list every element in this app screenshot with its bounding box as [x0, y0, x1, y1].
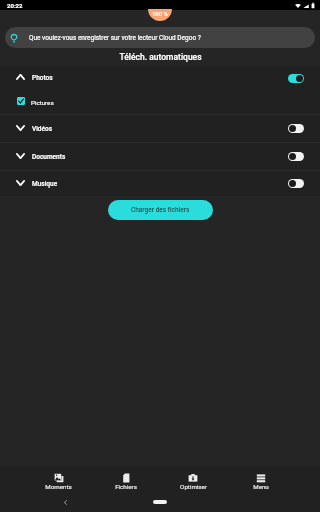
- staticText: Que voulez-vous enregistrer sur votre le…: [29, 34, 201, 42]
- button[interactable]: Off: [288, 152, 304, 161]
- staticText: Vidéos: [32, 125, 53, 133]
- staticText: Photos: [32, 74, 53, 82]
- staticText: Charger des fichiers: [131, 206, 190, 214]
- button[interactable]: Tip: [5, 27, 315, 48]
- button[interactable]: Vidéos: [0, 115, 320, 142]
- button[interactable]: On: [288, 74, 304, 83]
- button[interactable]: Off: [288, 124, 304, 133]
- button[interactable]: Home: [153, 500, 167, 504]
- button[interactable]: Photos: [0, 66, 320, 90]
- staticText: Documents: [32, 153, 66, 161]
- button[interactable]: Musique: [0, 171, 320, 196]
- button[interactable]: Pictures: [0, 90, 320, 114]
- button[interactable]: Optimiser: [159, 466, 227, 490]
- button[interactable]: Documents: [0, 143, 320, 170]
- staticText: Menu: [253, 483, 269, 490]
- button[interactable]: Moments: [25, 466, 92, 490]
- staticText: Moments: [45, 483, 72, 490]
- staticText: Optimiser: [180, 483, 207, 490]
- button[interactable]: Charger des fichiers: [108, 200, 213, 220]
- other: Tip: [9, 33, 19, 43]
- button[interactable]: Menu: [227, 466, 295, 490]
- button[interactable]: Off: [288, 179, 304, 188]
- staticText: Pictures: [31, 99, 54, 106]
- staticText: Fichiers: [115, 483, 137, 490]
- staticText: 20:22: [7, 2, 23, 9]
- staticText: Téléch. automatiques: [119, 52, 202, 62]
- staticText: Musique: [32, 180, 58, 188]
- button[interactable]: Back: [60, 497, 71, 508]
- staticText: 100 %: [152, 10, 168, 17]
- button[interactable]: Fichiers: [92, 466, 159, 490]
